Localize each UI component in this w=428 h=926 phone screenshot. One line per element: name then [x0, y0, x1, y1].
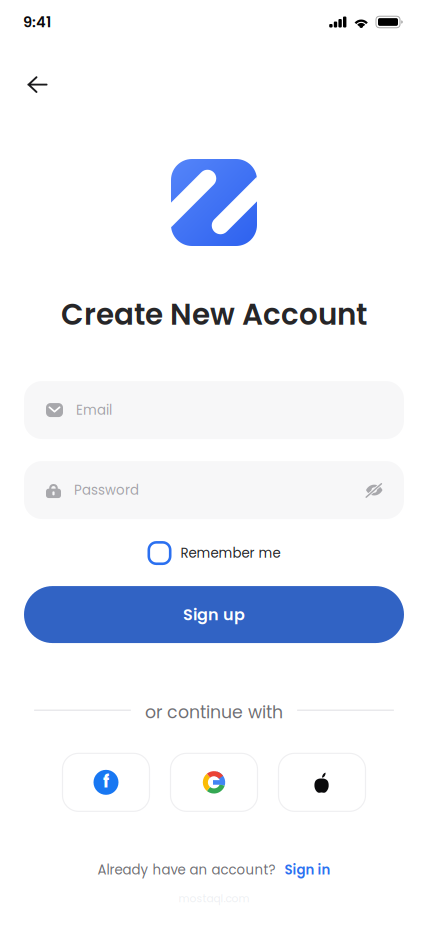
staticText: 9:41 [23, 12, 51, 32]
staticText: Create New Account [61, 294, 367, 335]
staticText: mostaql.com [178, 891, 249, 906]
button[interactable]: Continue with Apple [278, 753, 365, 811]
staticText: Email [76, 401, 112, 419]
button[interactable]: Sign up [24, 586, 404, 643]
staticText: Already have an account? [97, 860, 275, 879]
button[interactable]: Show password [361, 479, 387, 502]
button[interactable]: Continue with Facebook [62, 753, 149, 811]
button[interactable]: Back [18, 44, 57, 104]
button[interactable]: Remember me [147, 541, 280, 565]
staticText: Password [74, 481, 139, 499]
staticText: Sign in [284, 860, 330, 879]
button[interactable]: Sign in [284, 860, 330, 879]
staticText: f [103, 769, 109, 793]
button[interactable]: Continue with Google [170, 753, 257, 811]
staticText: or continue with [145, 700, 283, 724]
staticText: Remember me [180, 544, 280, 562]
staticText: Sign up [183, 603, 245, 626]
